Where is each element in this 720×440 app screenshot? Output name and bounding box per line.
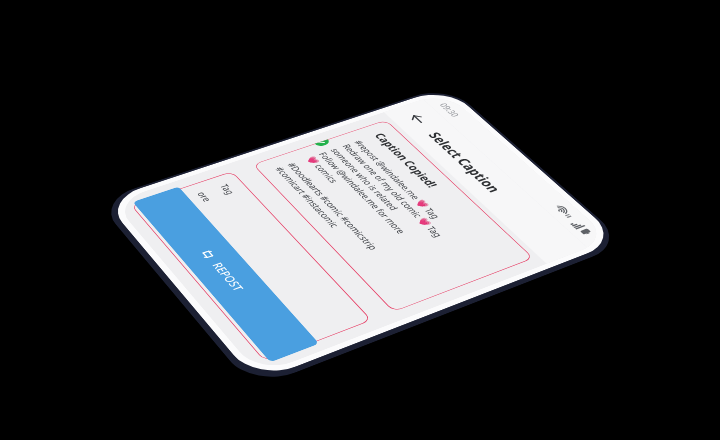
- staticText: Select Caption: [424, 130, 506, 195]
- staticText: REPOST: [208, 260, 248, 293]
- staticText: ore: [194, 190, 215, 203]
- button[interactable]: Back: [391, 104, 444, 134]
- staticText: Caption Copied!: [371, 131, 441, 189]
- staticText: #repost @windalee.me 💗 Tag Redraw one of…: [304, 139, 458, 252]
- button[interactable]: Tag: [131, 171, 372, 361]
- button[interactable]: REPOST: [132, 186, 319, 362]
- staticText: 09:30: [437, 102, 463, 118]
- staticText: #Doodlearts #comic #comicstrip #comicart…: [272, 161, 381, 256]
- button[interactable]: Caption Copied!: [253, 120, 534, 312]
- staticText: Tag: [217, 182, 238, 196]
